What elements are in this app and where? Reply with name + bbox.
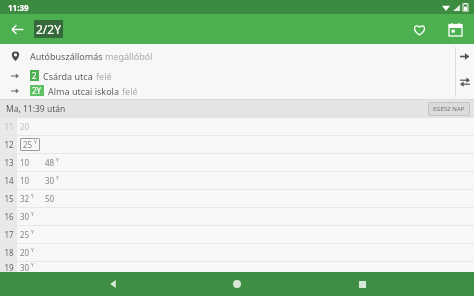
button[interactable]: 16 xyxy=(0,208,474,225)
button[interactable]: 13 xyxy=(0,154,474,171)
button[interactable]: Go xyxy=(457,49,472,64)
staticText: 25 xyxy=(23,139,33,150)
staticText: 11:39 xyxy=(8,2,29,13)
staticText: 10 xyxy=(20,157,30,168)
staticText: 32 xyxy=(20,193,30,204)
button[interactable]: 19 xyxy=(0,262,474,272)
button[interactable]: Recent apps xyxy=(350,272,374,296)
staticText: Alma utcai iskola xyxy=(48,85,122,97)
button[interactable]: 14 xyxy=(0,172,474,189)
staticText: 11 xyxy=(4,121,14,132)
staticText: 18 xyxy=(4,247,14,258)
staticText: Y xyxy=(31,193,34,200)
staticText: Autóbuszállomás xyxy=(30,50,105,62)
button[interactable]: 12 xyxy=(0,136,474,153)
staticText: Y xyxy=(56,157,59,164)
button[interactable]: 11 xyxy=(0,118,474,135)
staticText: Y xyxy=(56,175,59,182)
staticText: Y xyxy=(31,247,34,254)
button[interactable]: Swap direction xyxy=(457,74,472,89)
staticText: felé xyxy=(96,70,112,82)
staticText: 20 xyxy=(20,121,30,132)
staticText: Csárda utca xyxy=(43,70,96,82)
staticText: 13 xyxy=(4,157,14,168)
staticText: 50 xyxy=(45,193,55,204)
button[interactable]: Back xyxy=(101,272,125,296)
button[interactable]: Favorite xyxy=(408,18,430,40)
button[interactable]: 17 xyxy=(0,226,474,243)
staticText: Y xyxy=(31,211,34,218)
staticText: Ma, 11:39 után xyxy=(6,103,66,115)
button[interactable]: Back xyxy=(4,16,30,42)
staticText: EGÉSZ NAP xyxy=(433,105,465,113)
staticText: Y xyxy=(31,229,34,236)
button[interactable]: 18 xyxy=(0,244,474,261)
staticText: 19 xyxy=(4,262,14,272)
button[interactable]: 2Y xyxy=(0,83,474,98)
button[interactable]: Calendar xyxy=(444,18,466,40)
button[interactable]: 15 xyxy=(0,190,474,207)
staticText: 15 xyxy=(4,193,14,204)
staticText: 2Y xyxy=(32,85,42,96)
staticText: 10 xyxy=(20,175,30,186)
staticText: 30 xyxy=(45,175,55,186)
staticText: felé xyxy=(122,85,138,97)
button[interactable]: 2 xyxy=(0,68,474,83)
staticText: 14 xyxy=(4,175,14,186)
staticText: 12 xyxy=(4,139,14,150)
staticText: 17 xyxy=(4,229,14,240)
staticText: Y xyxy=(34,139,37,146)
staticText: 2/2Y xyxy=(36,21,61,37)
staticText: 30 xyxy=(20,262,30,272)
staticText: 16 xyxy=(4,211,14,222)
staticText: Y xyxy=(31,262,34,269)
staticText: 20 xyxy=(20,247,30,258)
staticText: 25 xyxy=(20,229,30,240)
button[interactable]: EGÉSZ NAP xyxy=(428,102,470,116)
button[interactable]: Autóbuszállomás xyxy=(0,44,474,68)
staticText: 48 xyxy=(45,157,55,168)
staticText: 30 xyxy=(20,211,30,222)
staticText: megállóból xyxy=(105,50,153,62)
staticText: 2 xyxy=(32,70,37,81)
button[interactable]: Home xyxy=(225,272,249,296)
